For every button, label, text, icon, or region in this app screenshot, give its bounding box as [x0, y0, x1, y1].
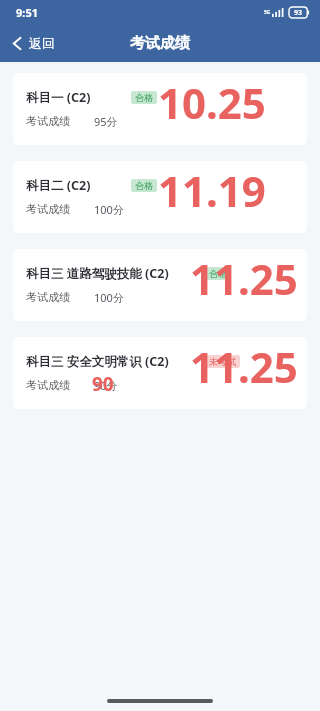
staticText: 考试成绩 — [26, 378, 70, 392]
staticText: 11.25 — [190, 338, 298, 395]
staticText: 科目二 (C2) — [26, 177, 91, 194]
staticText: 未考试 — [209, 356, 236, 367]
staticText: 90分 — [94, 378, 118, 393]
staticText: 考试成绩 — [26, 202, 70, 216]
staticText: 90 — [92, 371, 114, 397]
staticText: 考试成绩 — [26, 114, 70, 128]
staticText: 考试成绩 — [130, 34, 190, 53]
staticText: 100分 — [94, 290, 124, 305]
staticText: 11.19 — [158, 162, 266, 219]
other: 返回 — [12, 36, 22, 51]
staticText: 科目三 安全文明常识 (C2) — [26, 353, 169, 370]
staticText: 科目三 道路驾驶技能 (C2) — [26, 265, 169, 282]
button[interactable]: 科目一 (C2) — [13, 73, 307, 145]
button[interactable]: 返回 — [0, 29, 67, 57]
staticText: 考试成绩 — [26, 290, 70, 304]
staticText: 返回 — [29, 35, 55, 51]
staticText: 100分 — [94, 202, 124, 217]
staticText: 11.25 — [190, 250, 298, 307]
staticText: 93 — [294, 8, 303, 18]
button[interactable]: 科目三 道路驾驶技能 (C2) — [13, 249, 307, 321]
staticText: 合格 — [209, 268, 227, 279]
staticText: 95分 — [94, 114, 118, 129]
staticText: 合格 — [135, 180, 153, 191]
staticText: 科目一 (C2) — [26, 89, 91, 106]
button[interactable]: 科目二 (C2) — [13, 161, 307, 233]
staticText: 5G — [264, 9, 271, 16]
staticText: 9:51 — [16, 5, 38, 20]
staticText: 合格 — [135, 92, 153, 103]
staticText: 10.25 — [158, 74, 266, 131]
button[interactable]: 科目三 安全文明常识 (C2) — [13, 337, 307, 409]
